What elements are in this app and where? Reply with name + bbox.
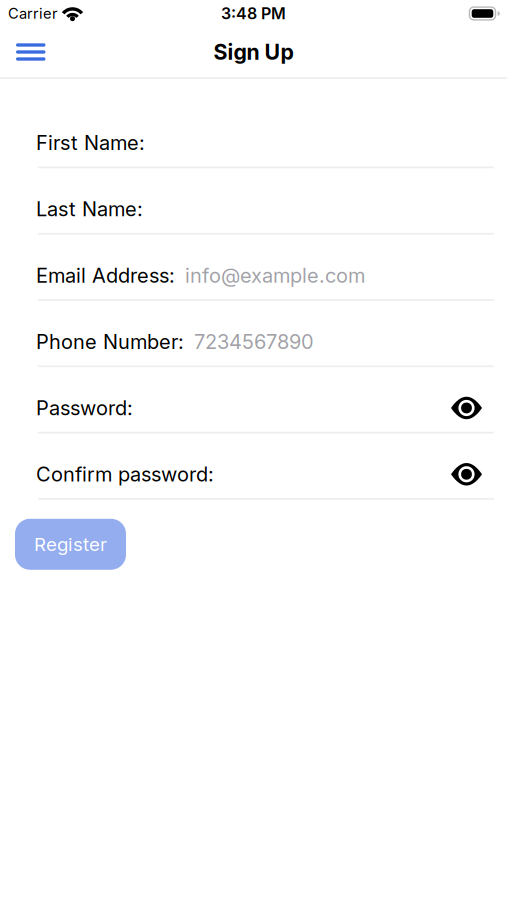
- staticText: Sign Up: [213, 39, 293, 65]
- button[interactable]: Email Address text field: [185, 264, 494, 287]
- staticText: Phone Number:: [36, 330, 184, 353]
- staticText: info@example.com: [185, 264, 365, 287]
- staticText: 3:48 PM: [221, 4, 286, 23]
- staticText: Last Name:: [36, 197, 143, 221]
- button[interactable]: Register: [15, 519, 126, 570]
- staticText: Confirm password:: [36, 462, 214, 486]
- staticText: First Name:: [36, 131, 145, 155]
- staticText: Password:: [36, 396, 133, 420]
- staticText: 7234567890: [194, 330, 314, 353]
- button[interactable]: Show confirm password: [451, 463, 482, 485]
- staticText: Email Address:: [36, 264, 175, 287]
- button[interactable]: Show password: [451, 397, 482, 419]
- staticText: Register: [34, 533, 107, 555]
- button[interactable]: Phone Number text field: [194, 330, 494, 353]
- button[interactable]: Menu: [14, 37, 47, 67]
- staticText: Carrier: [8, 5, 58, 22]
